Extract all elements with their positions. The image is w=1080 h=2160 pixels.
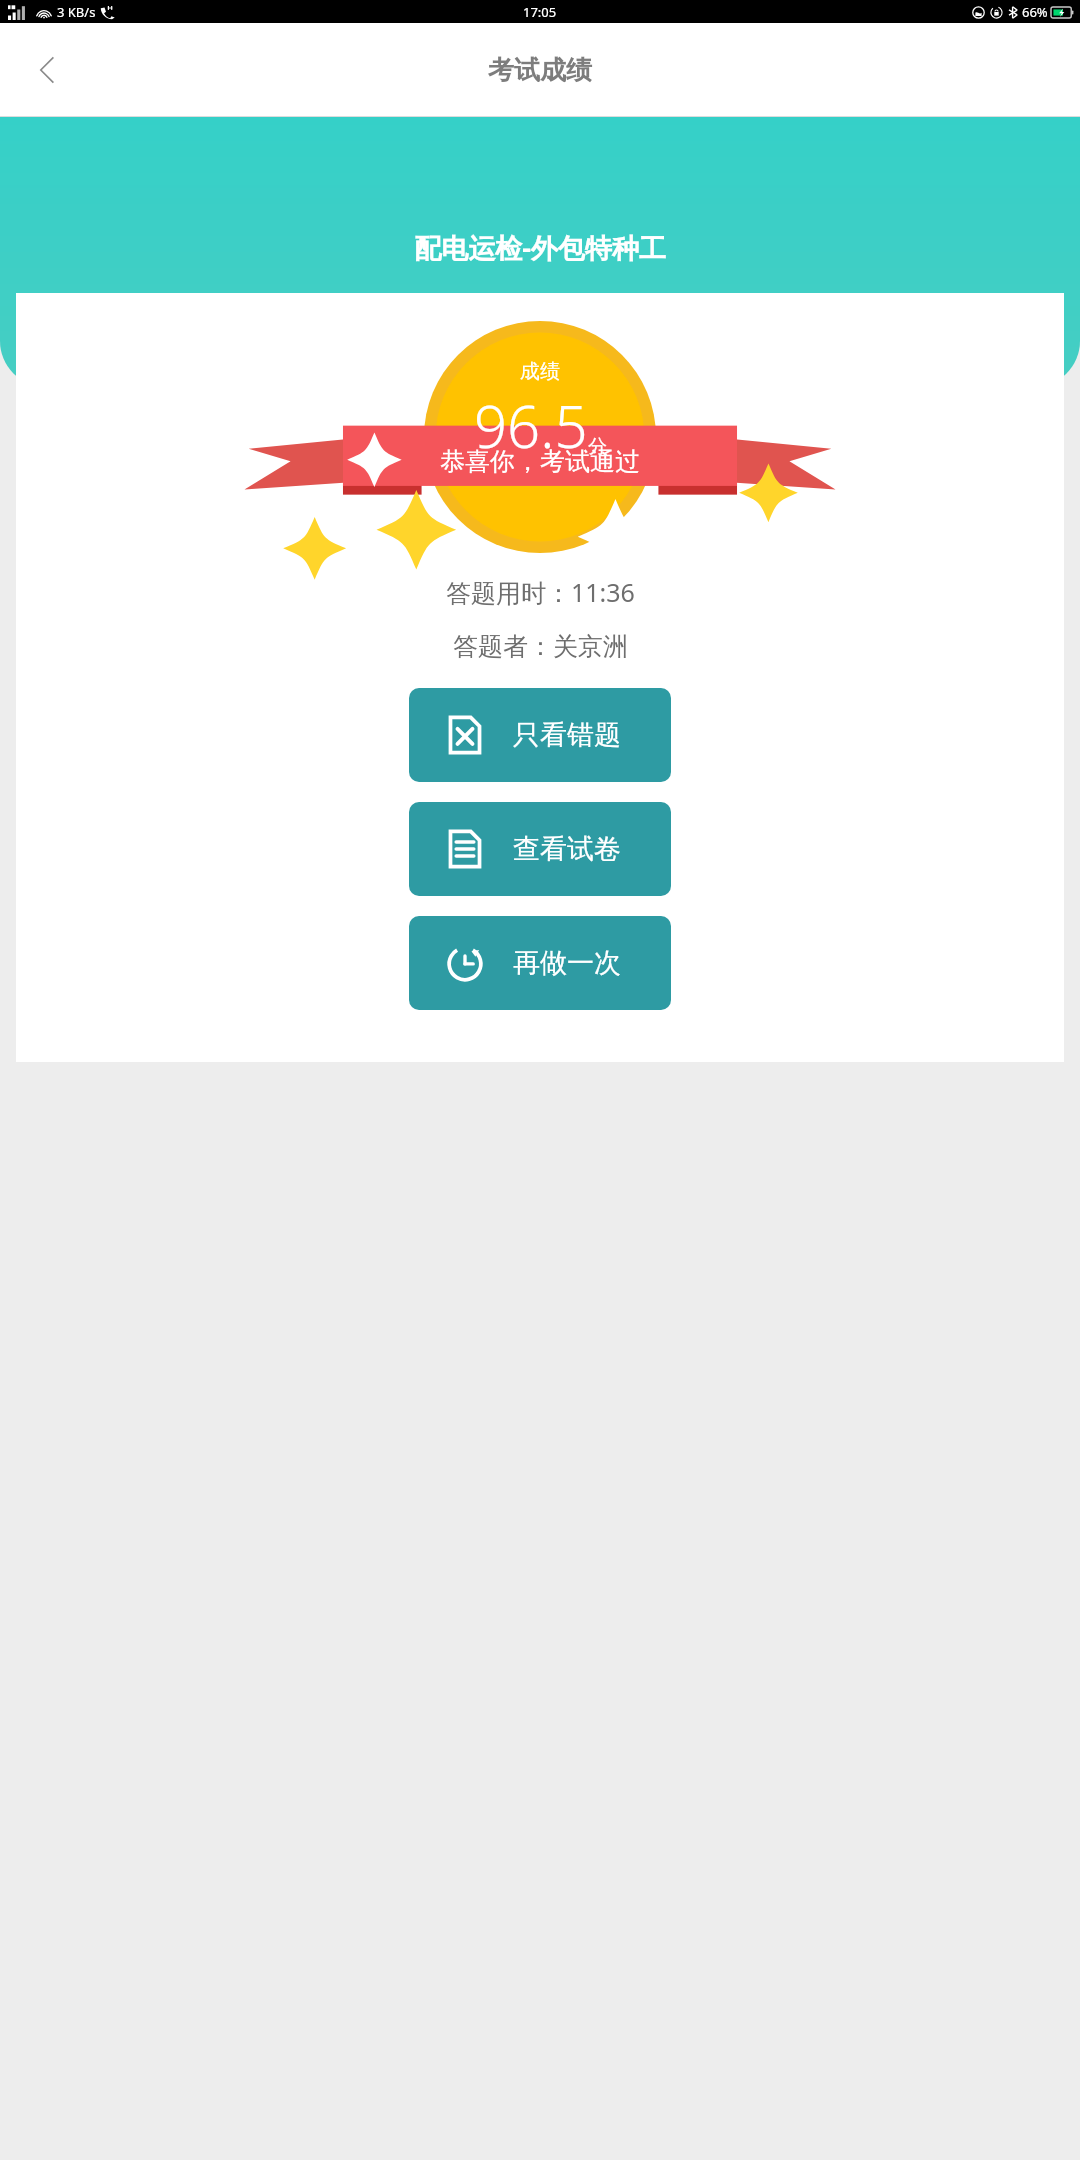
staticText: 96.5 bbox=[474, 386, 588, 465]
staticText: 17:05 bbox=[523, 3, 557, 21]
staticText: 只看错题 bbox=[513, 718, 621, 752]
button[interactable]: Back bbox=[22, 44, 74, 96]
staticText: 考试成绩 bbox=[488, 54, 592, 87]
button[interactable]: 查看试卷 bbox=[409, 802, 671, 896]
staticText: 答题用时：11:36 bbox=[446, 575, 635, 609]
button[interactable]: 再做一次 bbox=[409, 916, 671, 1010]
button[interactable]: 只看错题 bbox=[409, 688, 671, 782]
staticText: 答题者：关京洲 bbox=[453, 631, 628, 662]
staticText: 3 KB/s bbox=[57, 3, 96, 21]
staticText: 查看试卷 bbox=[513, 832, 621, 866]
staticText: 恭喜你，考试通过 bbox=[440, 446, 640, 477]
staticText: 66% bbox=[1022, 3, 1048, 21]
staticText: 配电运检-外包特种工 bbox=[414, 229, 666, 266]
staticText: 再做一次 bbox=[513, 946, 621, 980]
staticText: 分 bbox=[588, 435, 607, 459]
staticText: 成绩 bbox=[520, 359, 560, 384]
